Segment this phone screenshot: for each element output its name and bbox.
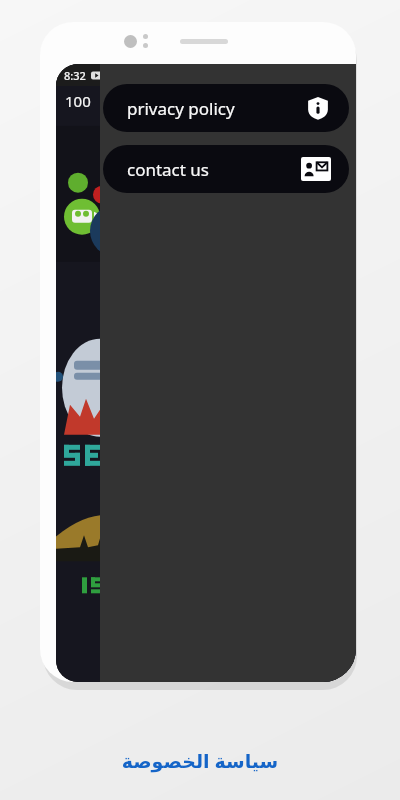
other: Privacy policy information <box>305 95 331 121</box>
other: Contact us <box>301 157 331 181</box>
staticText: contact us <box>127 158 209 181</box>
staticText: 8:32 <box>64 68 86 83</box>
button[interactable]: contact us <box>103 145 349 193</box>
button[interactable]: privacy policy <box>103 84 349 132</box>
staticText: سياسة الخصوصة <box>0 748 400 774</box>
staticText: privacy policy <box>127 97 235 120</box>
staticText: 100 <box>65 91 91 111</box>
